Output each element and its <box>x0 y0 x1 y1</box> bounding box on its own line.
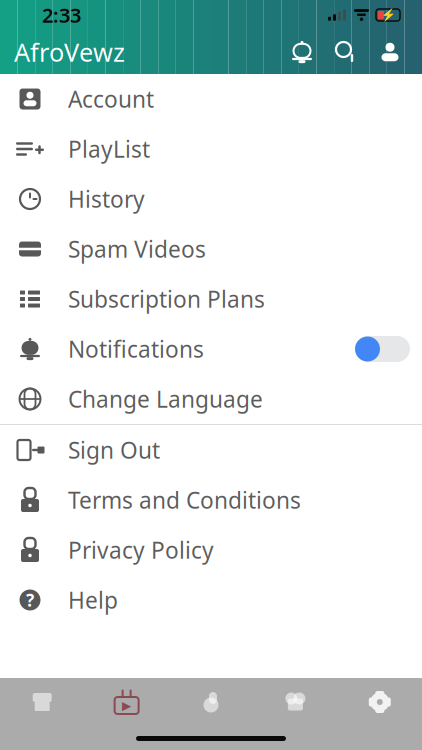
button[interactable]: History <box>0 174 422 224</box>
button[interactable]: Subscription Plans <box>0 274 422 324</box>
button[interactable]: Spam Videos <box>0 224 422 274</box>
staticText: Change Language <box>68 384 263 414</box>
staticText: Subscription Plans <box>68 284 265 314</box>
staticText: Notifications <box>68 334 204 364</box>
staticText: Privacy Policy <box>68 535 214 565</box>
button[interactable]: Channels <box>84 680 169 724</box>
staticText: Terms and Conditions <box>68 485 301 515</box>
staticText: AfroVewz <box>14 35 125 69</box>
button[interactable]: Notifications toggle <box>355 335 410 363</box>
button[interactable]: Profile <box>368 32 412 72</box>
button[interactable]: Terms and Conditions <box>0 475 422 525</box>
button[interactable]: Account <box>0 74 422 124</box>
staticText: ? <box>26 588 34 611</box>
button[interactable]: PlayList <box>0 124 422 174</box>
staticText: Sign Out <box>68 435 160 465</box>
button[interactable]: Settings <box>338 680 422 724</box>
staticText: PlayList <box>68 134 150 164</box>
staticText: ▶ <box>122 699 131 712</box>
staticText: 2:33 <box>42 2 81 28</box>
button[interactable]: ? <box>0 575 422 625</box>
staticText: Spam Videos <box>68 234 206 264</box>
button[interactable]: Sign Out <box>0 425 422 475</box>
button[interactable]: Home <box>0 680 84 724</box>
staticText: ⚡ <box>380 8 395 22</box>
button[interactable]: Notifications <box>280 32 324 72</box>
staticText: History <box>68 184 145 214</box>
button[interactable]: Trending <box>169 680 253 724</box>
staticText: Help <box>68 585 118 615</box>
staticText: Account <box>68 84 154 114</box>
button[interactable]: Search <box>324 32 368 72</box>
button[interactable]: Privacy Policy <box>0 525 422 575</box>
button[interactable]: Favorites <box>253 680 338 724</box>
button[interactable]: Notifications <box>0 324 422 374</box>
button[interactable]: Change Language <box>0 374 422 424</box>
